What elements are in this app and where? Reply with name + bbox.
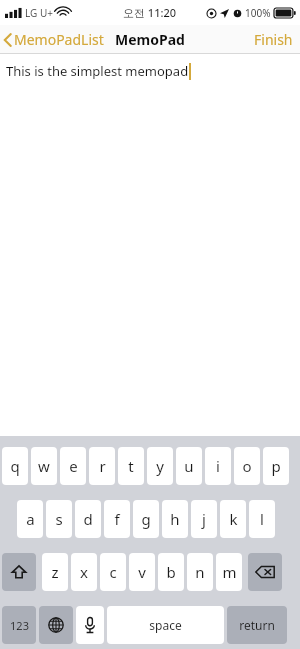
staticText: b (166, 562, 176, 582)
staticText: x (80, 562, 88, 582)
button[interactable]: e (60, 447, 86, 485)
staticText: c (109, 562, 117, 582)
button[interactable]: d (75, 500, 101, 538)
staticText: LG U+ (25, 6, 53, 20)
button[interactable]: o (234, 447, 260, 485)
button[interactable]: y (147, 447, 173, 485)
button[interactable]: t (118, 447, 144, 485)
button[interactable]: w (31, 447, 57, 485)
button[interactable]: q (2, 447, 28, 485)
staticText: u (184, 456, 194, 476)
button[interactable]: a (17, 500, 43, 538)
staticText: m (222, 562, 237, 582)
staticText: f (114, 509, 120, 529)
button[interactable]: Shift (2, 553, 36, 591)
staticText: Finish (254, 30, 293, 49)
button[interactable]: u (176, 447, 202, 485)
staticText: return (239, 617, 275, 633)
button[interactable]: j (191, 500, 217, 538)
button[interactable]: x (71, 553, 97, 591)
staticText: h (170, 509, 180, 529)
staticText: s (55, 509, 63, 529)
staticText: j (202, 509, 206, 529)
button[interactable]: n (187, 553, 213, 591)
button[interactable]: k (220, 500, 246, 538)
button[interactable]: Change keyboard (39, 606, 73, 644)
button[interactable]: c (100, 553, 126, 591)
button[interactable]: g (133, 500, 159, 538)
button[interactable]: Backspace (248, 553, 282, 591)
staticText: MemoPadList (14, 30, 104, 49)
staticText: t (128, 456, 134, 476)
button[interactable]: f (104, 500, 130, 538)
staticText: d (83, 509, 93, 529)
button[interactable]: r (89, 447, 115, 485)
staticText: v (138, 562, 146, 582)
staticText: z (51, 562, 59, 582)
staticText: This is the simplest memopad (6, 62, 189, 80)
staticText: r (99, 456, 106, 476)
button[interactable]: s (46, 500, 72, 538)
staticText: a (26, 509, 35, 529)
button[interactable]: z (42, 553, 68, 591)
staticText: e (69, 456, 78, 476)
button[interactable]: MemoPadList (0, 27, 110, 52)
button[interactable]: i (205, 447, 231, 485)
staticText: g (141, 509, 151, 529)
button[interactable]: v (129, 553, 155, 591)
staticText: p (271, 456, 281, 476)
staticText: o (242, 456, 252, 476)
button[interactable]: m (216, 553, 242, 591)
staticText: y (156, 456, 164, 476)
staticText: space (149, 617, 182, 633)
staticText: 100% (245, 6, 271, 20)
button[interactable]: l (249, 500, 275, 538)
button[interactable]: h (162, 500, 188, 538)
staticText: 오전 11:20 (123, 5, 177, 20)
staticText: 123 (10, 618, 29, 633)
button[interactable]: Finish (247, 26, 300, 53)
staticText: n (195, 562, 205, 582)
staticText: l (260, 509, 264, 529)
staticText: q (10, 456, 20, 476)
staticText: MemoPad (115, 30, 185, 49)
button[interactable]: space (107, 606, 224, 644)
button[interactable]: Dictate (76, 606, 104, 644)
button[interactable]: return (227, 606, 287, 644)
button[interactable]: 123 (2, 606, 36, 644)
staticText: k (229, 509, 238, 529)
button[interactable]: p (263, 447, 289, 485)
staticText: w (38, 456, 50, 476)
staticText: i (216, 456, 220, 476)
button[interactable]: b (158, 553, 184, 591)
